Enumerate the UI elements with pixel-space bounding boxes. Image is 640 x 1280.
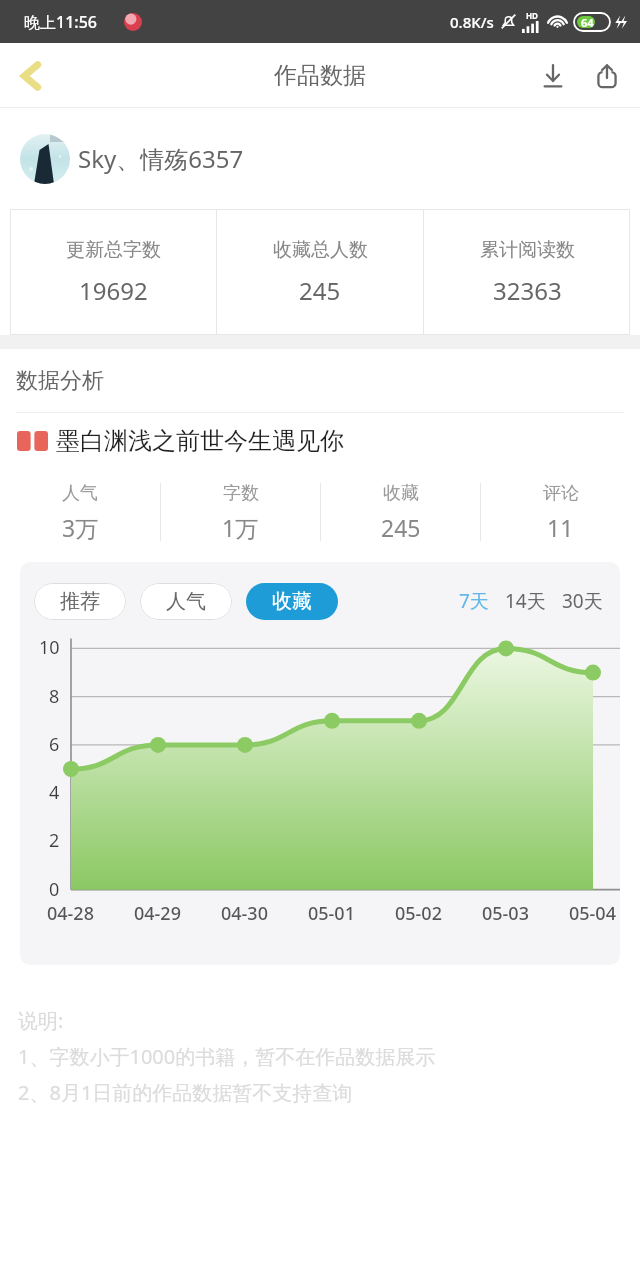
button[interactable]: 14天 (500, 582, 551, 620)
staticText: 累计阅读数 (480, 238, 575, 262)
staticText: 64 (581, 15, 594, 30)
staticText: 3万 (62, 512, 99, 543)
button[interactable]: Share (580, 49, 634, 103)
staticText: 7天 (459, 588, 489, 614)
staticText: 作品数据 (274, 61, 366, 90)
staticText: 2、8月1日前的作品数据暂不支持查询 (18, 1079, 353, 1106)
button[interactable]: 累计阅读数 (424, 209, 630, 335)
staticText: 人气 (62, 482, 98, 505)
button[interactable]: 人气 (140, 583, 232, 620)
staticText: 05-01 (308, 901, 355, 926)
button[interactable]: 更新总字数 (10, 209, 216, 335)
staticText: 245 (299, 274, 341, 307)
staticText: 1万 (222, 512, 259, 543)
button[interactable]: Download (526, 49, 580, 103)
staticText: 04-29 (134, 901, 181, 926)
staticText: 6 (49, 732, 60, 757)
staticText: 4 (49, 780, 60, 805)
staticText: 推荐 (60, 589, 100, 614)
staticText: 收藏 (272, 589, 312, 614)
staticText: Sky、情殇6357 (78, 142, 244, 175)
button[interactable]: 30天 (557, 582, 608, 620)
button[interactable]: 收藏 (321, 468, 480, 556)
staticText: 0.8K/s (450, 12, 494, 32)
button[interactable]: Back (0, 45, 62, 107)
staticText: 更新总字数 (66, 238, 161, 262)
staticText: 2 (49, 828, 60, 853)
staticText: 收藏总人数 (273, 238, 368, 262)
staticText: 字数 (223, 482, 259, 505)
button[interactable]: 人气 (0, 468, 160, 556)
staticText: 说明: (18, 1007, 64, 1034)
staticText: 05-04 (569, 901, 616, 926)
staticText: 人气 (166, 589, 206, 614)
staticText: 收藏 (383, 482, 419, 505)
staticText: 32363 (493, 274, 562, 307)
button[interactable]: 推荐 (34, 583, 126, 620)
staticText: 墨白渊浅之前世今生遇见你 (56, 426, 344, 456)
staticText: 1、字数小于1000的书籍，暂不在作品数据展示 (18, 1043, 436, 1070)
staticText: 14天 (505, 588, 546, 614)
staticText: 11 (547, 512, 574, 543)
button[interactable]: 墨白渊浅之前世今生遇见你 (0, 413, 640, 468)
staticText: HD (526, 10, 538, 21)
button[interactable]: 评论 (481, 468, 640, 556)
button[interactable]: 收藏总人数 (217, 209, 423, 335)
staticText: 10 (39, 635, 60, 660)
button[interactable]: Sky、情殇6357 (0, 108, 640, 209)
staticText: 30天 (562, 588, 603, 614)
staticText: 数据分析 (16, 367, 104, 395)
staticText: 19692 (79, 274, 148, 307)
button[interactable]: 7天 (454, 582, 494, 620)
staticText: 评论 (543, 482, 579, 505)
staticText: 04-30 (221, 901, 268, 926)
staticText: 05-03 (482, 901, 529, 926)
staticText: 05-02 (395, 901, 442, 926)
button[interactable]: 字数 (161, 468, 320, 556)
staticText: 245 (381, 512, 421, 543)
staticText: 04-28 (47, 901, 94, 926)
staticText: 0 (49, 877, 60, 902)
staticText: 晚上11:56 (24, 11, 97, 33)
button[interactable]: 收藏 (246, 583, 338, 620)
staticText: 8 (49, 684, 60, 709)
